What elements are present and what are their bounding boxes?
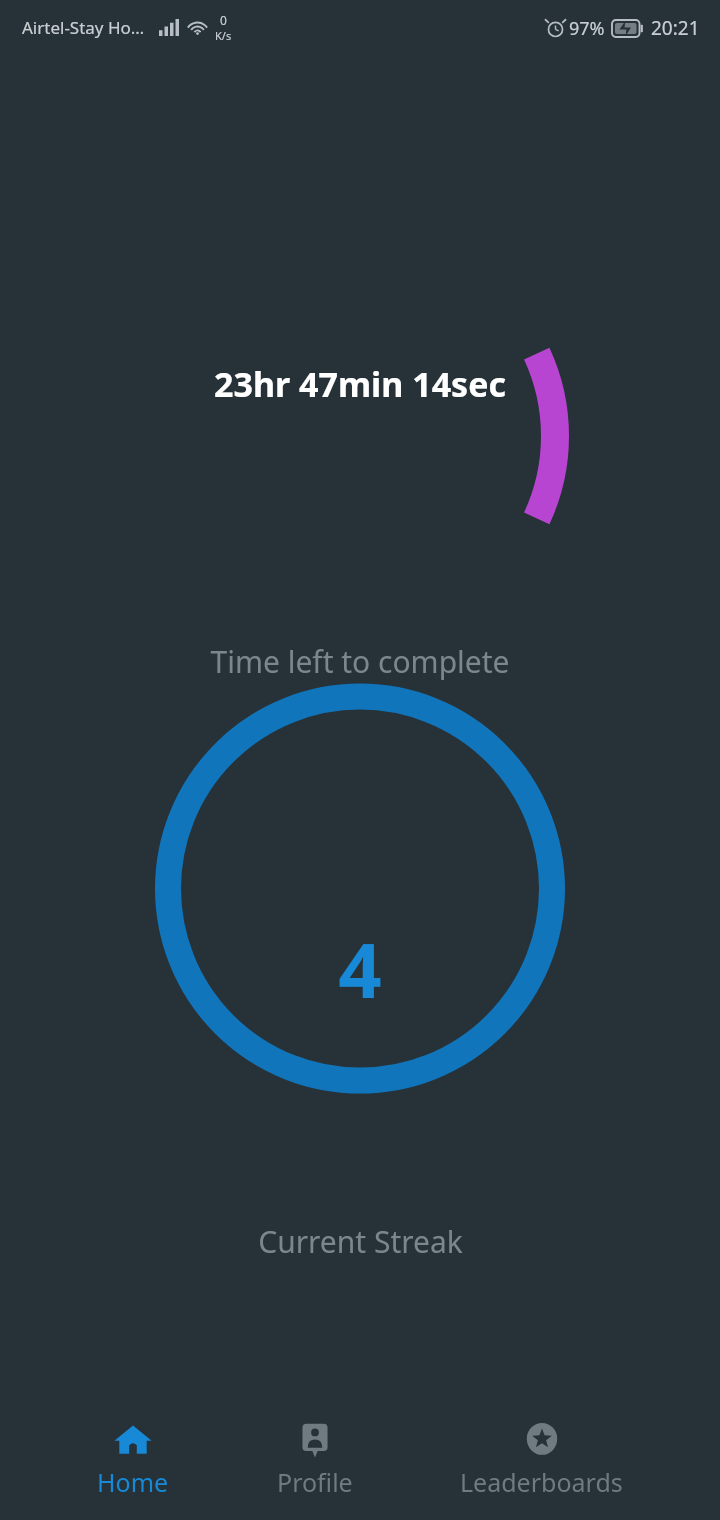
- staticText: 0: [220, 12, 227, 28]
- staticText: 4: [338, 917, 382, 1021]
- staticText: K/s: [215, 28, 232, 43]
- staticText: 20:21: [651, 15, 700, 41]
- staticText: Home: [97, 1465, 169, 1499]
- other: Profile: [296, 1421, 334, 1459]
- staticText: Leaderboards: [460, 1465, 623, 1499]
- staticText: Profile: [277, 1465, 353, 1499]
- button[interactable]: Leaderboards: [450, 1415, 633, 1505]
- staticText: Time left to complete: [210, 641, 510, 682]
- staticText: 23hr 47min 14sec: [214, 361, 506, 407]
- other: Home: [114, 1421, 152, 1459]
- button[interactable]: Home: [87, 1415, 179, 1505]
- staticText: 97%: [569, 16, 605, 41]
- staticText: Current Streak: [258, 1221, 463, 1262]
- other: Leaderboards: [523, 1421, 561, 1459]
- button[interactable]: Profile: [267, 1415, 363, 1505]
- staticText: Airtel-Stay Ho…: [22, 16, 145, 39]
